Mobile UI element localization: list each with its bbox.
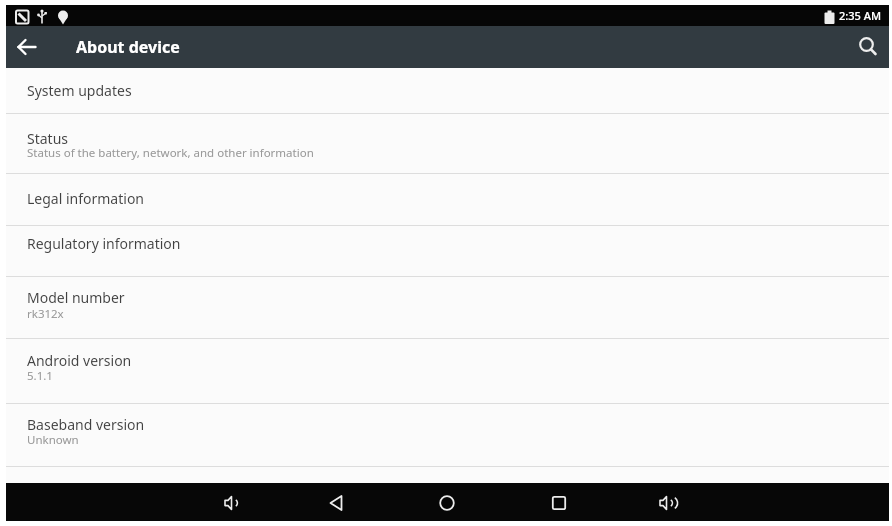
- staticText: Model number: [27, 288, 125, 307]
- button[interactable]: Status: [6, 114, 889, 173]
- staticText: System updates: [27, 81, 132, 100]
- staticText: 5.1.1: [27, 368, 53, 384]
- staticText: Status: [27, 129, 69, 148]
- button[interactable]: Regulatory information: [6, 226, 889, 276]
- button[interactable]: Model number: [6, 277, 889, 338]
- staticText: Android version: [27, 351, 132, 370]
- staticText: Unknown: [27, 432, 79, 448]
- staticText: Status of the battery, network, and othe…: [27, 145, 314, 161]
- staticText: Legal information: [27, 189, 145, 208]
- button[interactable]: Android version: [6, 339, 889, 403]
- button[interactable]: System updates: [6, 68, 889, 113]
- button[interactable]: [317, 483, 355, 521]
- staticText: 2:35 AM: [839, 8, 882, 23]
- button[interactable]: [6, 26, 48, 68]
- button[interactable]: Legal information: [6, 174, 889, 225]
- staticText: Regulatory information: [27, 234, 181, 253]
- staticText: rk312x: [27, 306, 64, 322]
- button[interactable]: [539, 483, 577, 521]
- button[interactable]: [650, 483, 688, 521]
- button[interactable]: [847, 26, 889, 68]
- staticText: About device: [76, 36, 180, 58]
- button[interactable]: [428, 483, 466, 521]
- button[interactable]: [206, 483, 244, 521]
- staticText: Baseband version: [27, 415, 145, 434]
- button[interactable]: Baseband version: [6, 404, 889, 466]
